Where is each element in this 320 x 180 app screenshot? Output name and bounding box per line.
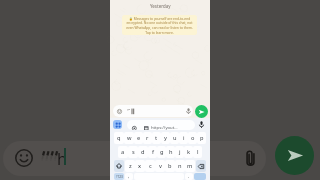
button[interactable]: m xyxy=(185,160,195,172)
staticText: k xyxy=(187,148,191,156)
staticText: z xyxy=(129,162,132,170)
staticText: f xyxy=(152,148,154,156)
staticText: d xyxy=(141,148,145,156)
button[interactable]: 🔒 Messages to yourself are end-to-end en… xyxy=(122,15,197,35)
button[interactable]: n xyxy=(175,160,185,172)
button[interactable]: Period xyxy=(185,173,193,180)
staticText: n xyxy=(178,162,182,170)
button[interactable]: Voice input xyxy=(198,121,205,128)
staticText: https://yout… xyxy=(151,125,178,130)
staticText: l xyxy=(197,148,199,156)
staticText: x xyxy=(138,162,142,170)
button[interactable]: https://yout… xyxy=(127,120,195,130)
button[interactable]: u xyxy=(170,132,179,144)
button[interactable]: c xyxy=(145,160,155,172)
staticText: m xyxy=(187,162,193,170)
button[interactable]: Emoji xyxy=(3,141,266,176)
button[interactable]: d xyxy=(138,146,148,158)
staticText: 🔒 Messages to yourself are end-to-end en… xyxy=(126,16,193,34)
staticText: b xyxy=(168,162,172,170)
button[interactable]: f xyxy=(148,146,157,158)
button[interactable]: l xyxy=(193,146,202,158)
button[interactable]: i xyxy=(179,132,188,144)
button[interactable]: g xyxy=(157,146,166,158)
button[interactable]: Gboard menu xyxy=(113,120,122,129)
staticText: h xyxy=(169,148,173,156)
staticText: q xyxy=(117,134,121,142)
button[interactable]: Enter xyxy=(194,173,206,180)
button[interactable]: e xyxy=(134,132,143,144)
staticText: p xyxy=(200,134,204,142)
button[interactable]: a xyxy=(118,146,128,158)
button[interactable]: Symbols xyxy=(114,173,124,180)
staticText: . xyxy=(188,173,190,180)
staticText: , xyxy=(128,173,130,180)
other: Emoji xyxy=(15,149,33,167)
staticText: a xyxy=(121,148,125,156)
button[interactable]: j xyxy=(175,146,184,158)
button[interactable]: v xyxy=(155,160,165,172)
staticText: y xyxy=(164,134,167,142)
staticText: w xyxy=(127,134,132,142)
button[interactable]: Comma xyxy=(125,173,133,180)
staticText: ?123 xyxy=(116,175,123,179)
button[interactable]: p xyxy=(197,132,206,144)
staticText: Yesterday xyxy=(150,3,171,9)
staticText: g xyxy=(160,148,164,156)
button[interactable]: Attach xyxy=(241,149,259,167)
button[interactable]: r xyxy=(143,132,152,144)
button[interactable]: k xyxy=(184,146,193,158)
staticText: r xyxy=(146,134,149,142)
staticText: c xyxy=(149,162,152,170)
button[interactable]: Shift xyxy=(114,160,124,172)
staticText: u xyxy=(173,134,177,142)
button[interactable]: w xyxy=(124,132,134,144)
button[interactable]: Send xyxy=(195,105,208,118)
button[interactable]: Send xyxy=(275,136,314,175)
button[interactable]: x xyxy=(135,160,145,172)
staticText: v xyxy=(159,162,162,170)
button[interactable]: b xyxy=(165,160,175,172)
staticText: o xyxy=(191,134,195,142)
staticText: j xyxy=(179,148,181,156)
staticText: e xyxy=(137,134,141,142)
staticText: t xyxy=(155,134,158,142)
button[interactable]: z xyxy=(125,160,135,172)
button[interactable]: y xyxy=(161,132,170,144)
staticText: i xyxy=(183,134,185,142)
button[interactable]: q xyxy=(114,132,124,144)
staticText: s xyxy=(132,148,135,156)
button[interactable]: o xyxy=(188,132,197,144)
button[interactable]: s xyxy=(128,146,138,158)
button[interactable]: Backspace xyxy=(196,160,206,172)
button[interactable]: h xyxy=(166,146,175,158)
staticText: h xyxy=(57,148,67,170)
button[interactable] xyxy=(113,105,193,117)
button[interactable]: t xyxy=(152,132,161,144)
